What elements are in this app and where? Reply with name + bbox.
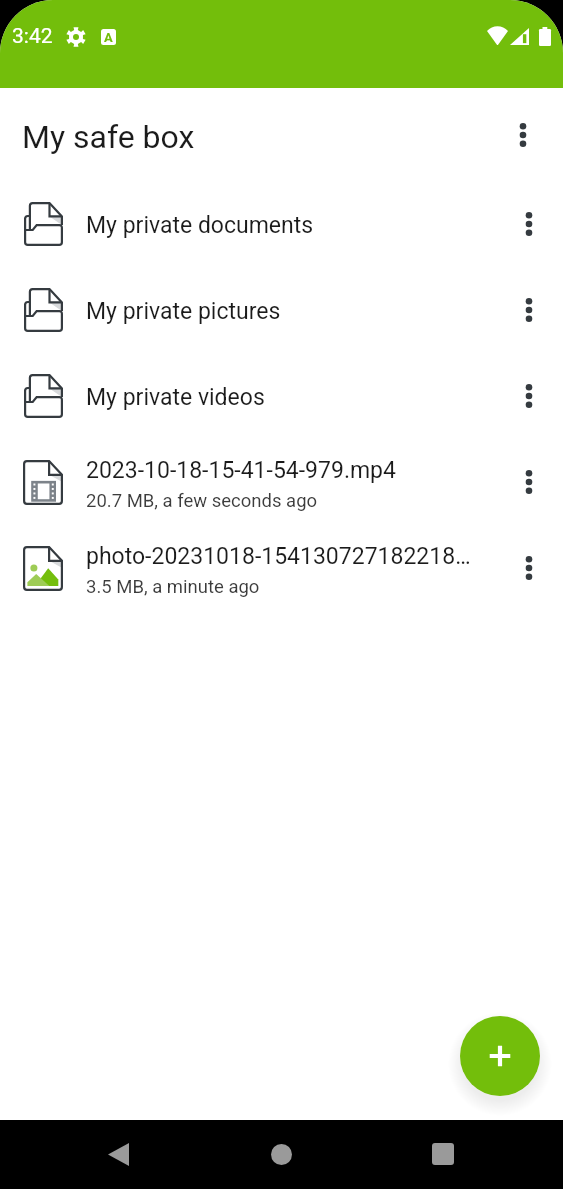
button[interactable]: Back xyxy=(88,1124,148,1184)
button[interactable]: My private documents xyxy=(0,181,563,267)
staticText: 20.7 MB, a few seconds ago xyxy=(86,490,318,512)
button[interactable]: Folder options xyxy=(494,353,563,439)
button[interactable]: Home xyxy=(251,1124,311,1184)
staticText: My private pictures xyxy=(86,298,281,325)
button[interactable]: File options xyxy=(494,525,563,611)
button[interactable]: More options xyxy=(483,88,563,181)
button[interactable]: Folder options xyxy=(494,267,563,353)
button[interactable]: My private pictures xyxy=(0,267,563,353)
staticText: A xyxy=(104,30,113,45)
staticText: photo-20231018-154130727182218… xyxy=(86,543,471,570)
staticText: My safe box xyxy=(22,118,195,156)
staticText: 3.5 MB, a minute ago xyxy=(86,576,260,598)
staticText: My private documents xyxy=(86,212,314,239)
button[interactable]: Add xyxy=(460,1016,540,1096)
staticText: My private videos xyxy=(86,384,265,411)
staticText: 2023-10-18-15-41-54-979.mp4 xyxy=(86,457,396,484)
button[interactable]: Recents xyxy=(413,1124,473,1184)
button[interactable]: Folder options xyxy=(494,181,563,267)
button[interactable]: 2023-10-18-15-41-54-979.mp4 xyxy=(0,439,563,525)
button[interactable]: File options xyxy=(494,439,563,525)
button[interactable]: photo-20231018-154130727182218… xyxy=(0,525,563,611)
staticText: 3:42 xyxy=(12,24,53,49)
button[interactable]: My private videos xyxy=(0,353,563,439)
